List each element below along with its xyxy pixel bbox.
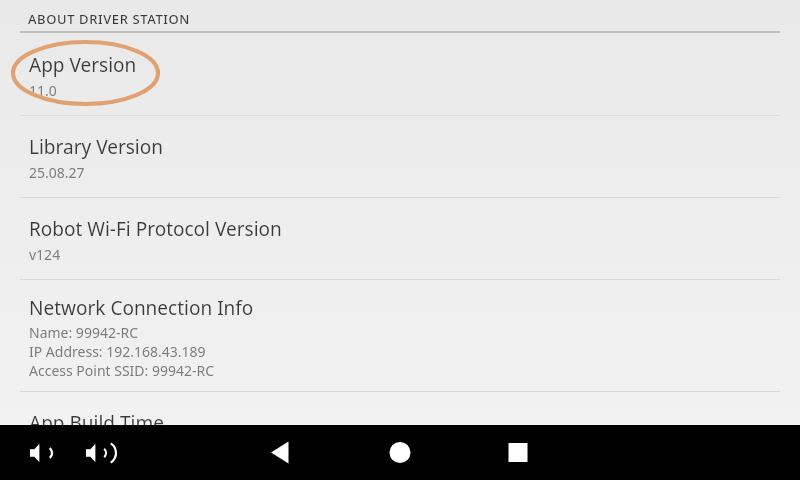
staticText: Name: 99942-RC bbox=[29, 323, 138, 342]
button[interactable]: Network Connection Info bbox=[0, 280, 800, 391]
button[interactable]: Library Version bbox=[0, 116, 800, 197]
staticText: Library Version bbox=[29, 134, 163, 160]
staticText: App Build Time bbox=[29, 410, 164, 436]
staticText: v124 bbox=[29, 245, 61, 264]
staticText: 25.08.27 bbox=[29, 163, 85, 182]
staticText: Robot Wi-Fi Protocol Version bbox=[29, 216, 282, 242]
staticText: Network Connection Info bbox=[29, 295, 254, 321]
button[interactable]: Home bbox=[378, 436, 422, 469]
staticText: Access Point SSID: 99942-RC bbox=[29, 361, 215, 380]
staticText: App Version bbox=[29, 52, 137, 78]
button[interactable]: Robot Wi-Fi Protocol Version bbox=[0, 198, 800, 279]
staticText: ABOUT DRIVER STATION bbox=[28, 10, 190, 28]
button[interactable]: Back bbox=[258, 436, 302, 469]
button[interactable]: Recent apps bbox=[496, 436, 540, 469]
staticText: IP Address: 192.168.43.189 bbox=[29, 342, 206, 361]
button[interactable]: App Version bbox=[0, 33, 800, 115]
button[interactable]: App Build Time bbox=[0, 392, 800, 454]
button[interactable]: Volume up bbox=[80, 435, 116, 471]
button[interactable]: Volume down bbox=[22, 435, 58, 471]
staticText: 11.0 bbox=[29, 81, 57, 100]
